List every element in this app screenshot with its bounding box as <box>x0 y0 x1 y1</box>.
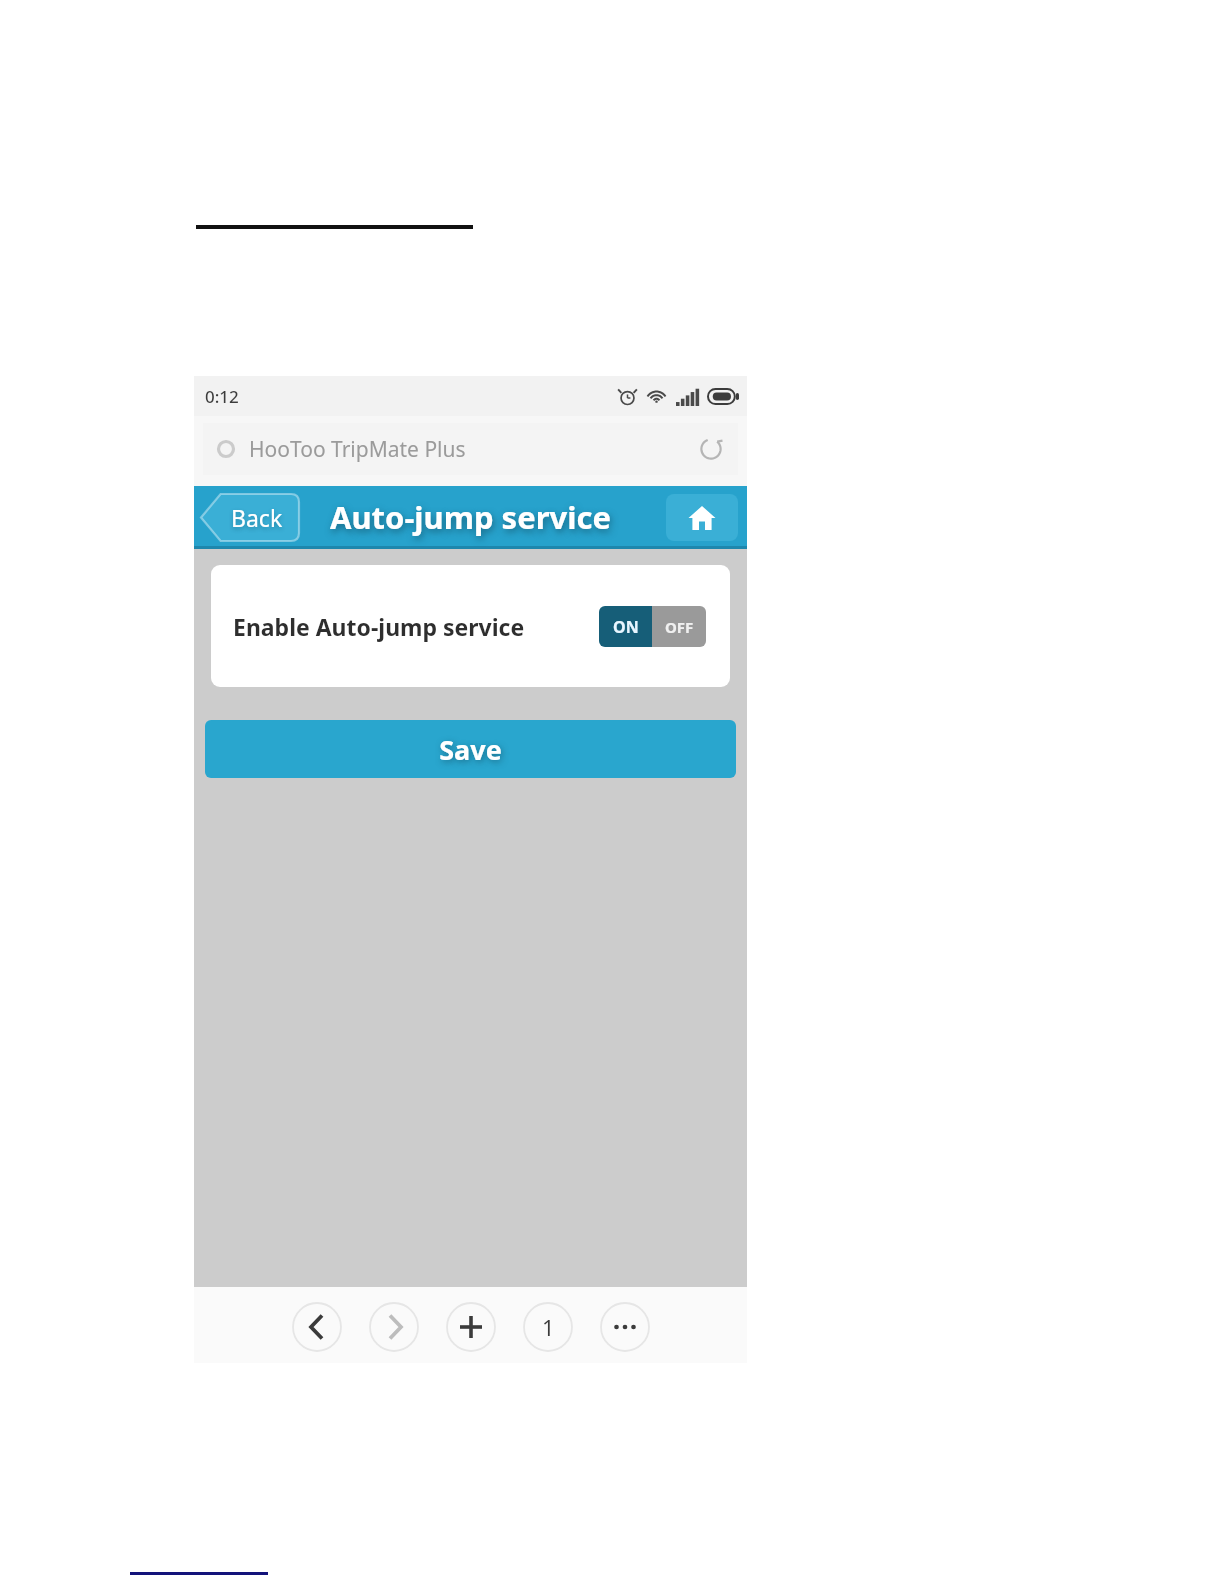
button[interactable]: More options <box>600 1302 650 1352</box>
staticText: ON <box>613 616 639 638</box>
button[interactable]: Tabs <box>523 1302 573 1352</box>
staticText: 0:12 <box>205 385 239 408</box>
button[interactable]: Enable Auto-jump service <box>211 565 730 687</box>
button[interactable]: Back <box>201 494 299 541</box>
staticText: HooToo TripMate Plus <box>249 435 466 464</box>
button[interactable]: New tab <box>446 1302 496 1352</box>
staticText: OFF <box>665 617 694 637</box>
button[interactable]: HooToo TripMate Plus <box>203 423 738 475</box>
button[interactable]: Save <box>205 720 736 778</box>
button[interactable]: Forward <box>369 1302 419 1352</box>
staticText: Auto-jump service <box>330 496 612 538</box>
staticText: Save <box>439 731 502 768</box>
button[interactable]: Back <box>292 1302 342 1352</box>
staticText: Back <box>231 502 283 533</box>
button[interactable]: Reload <box>698 436 724 462</box>
staticText: 1 <box>542 1312 555 1342</box>
button[interactable]: ON <box>599 606 706 647</box>
button[interactable]: Home <box>666 494 738 541</box>
staticText: Enable Auto-jump service <box>233 611 525 642</box>
